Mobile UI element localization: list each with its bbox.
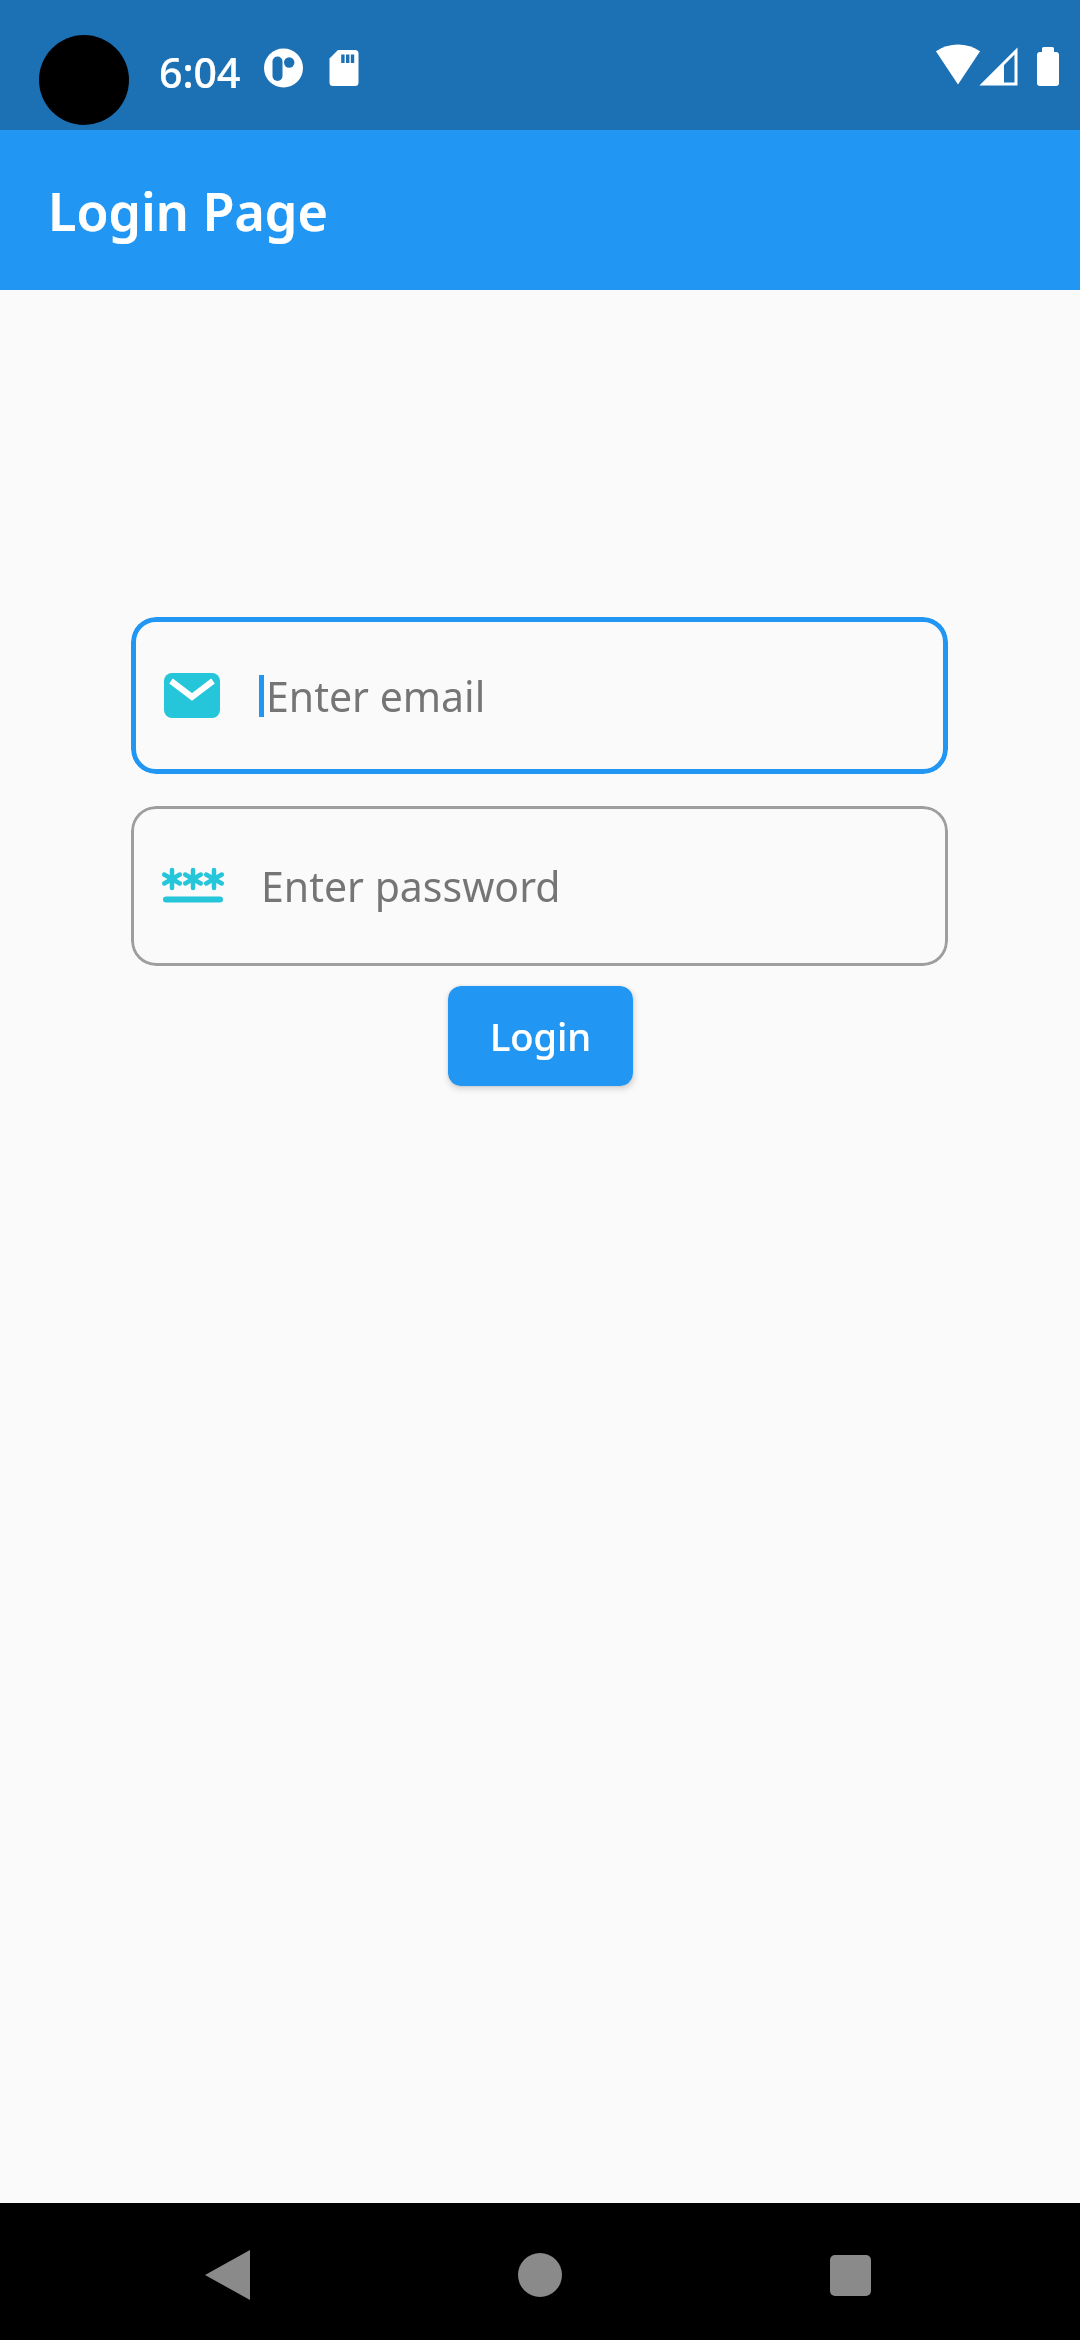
staticText: Login <box>490 1010 592 1062</box>
button[interactable]: Login <box>448 986 633 1086</box>
staticText: Enter password <box>261 858 561 914</box>
button[interactable] <box>800 2225 900 2325</box>
button[interactable]: Enter password <box>131 806 948 966</box>
button[interactable] <box>178 2225 278 2325</box>
button[interactable]: Enter email <box>131 617 948 774</box>
button[interactable] <box>490 2225 590 2325</box>
staticText: 6:04 <box>159 44 241 100</box>
staticText: Login Page <box>48 175 328 246</box>
staticText: Enter email <box>266 668 486 724</box>
